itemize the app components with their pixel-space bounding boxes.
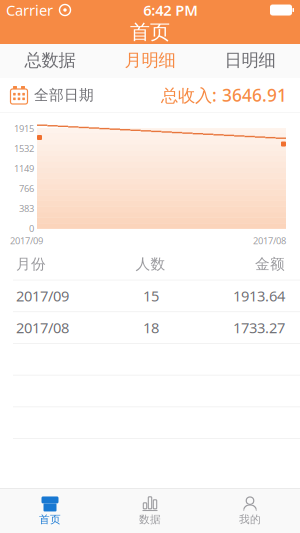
staticText: 1913.64 [233, 286, 285, 306]
staticText: 我的 [239, 513, 261, 526]
button[interactable]: 总数据 [0, 44, 100, 78]
button[interactable]: 我的 [200, 489, 300, 533]
staticText: 1532 [14, 142, 34, 155]
staticText: 全部日期 [34, 86, 94, 104]
staticText: 总数据 [24, 50, 75, 71]
staticText: 首页 [39, 513, 61, 526]
staticText: 首页 [130, 20, 170, 44]
button[interactable]: 数据 [100, 489, 200, 533]
staticText: 总收入: 3646.91 [161, 83, 287, 106]
staticText: 日明细 [224, 50, 275, 71]
staticText: Carrier [6, 0, 53, 20]
staticText: 766 [19, 182, 34, 195]
button[interactable]: 月明细 [100, 44, 200, 78]
staticText: 1149 [14, 162, 34, 175]
staticText: 18 [143, 318, 159, 337]
staticText: 1733.27 [233, 318, 285, 337]
staticText [53, 2, 59, 18]
staticText: 383 [19, 202, 34, 215]
staticText: 0 [29, 222, 34, 235]
staticText: 2017/09 [16, 286, 69, 306]
staticText: 2017/08 [253, 234, 286, 247]
button[interactable]: 日明细 [200, 44, 300, 78]
staticText: 2017/08 [16, 318, 69, 337]
staticText: 人数 [135, 255, 165, 273]
staticText: 1915 [14, 122, 34, 135]
staticText: 月份 [16, 255, 46, 273]
staticText: 金额 [255, 255, 285, 273]
staticText: 2017/09 [10, 234, 43, 247]
button[interactable]: 首页 [0, 489, 100, 533]
staticText: 15 [143, 286, 159, 306]
staticText: 数据 [139, 513, 161, 526]
button[interactable]: 全部日期 [0, 79, 94, 110]
staticText: 6:42 PM [143, 0, 198, 20]
staticText: 月明细 [124, 50, 175, 71]
